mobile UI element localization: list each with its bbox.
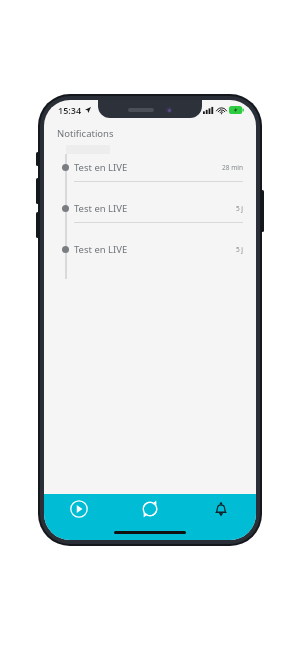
staticText: 5 j [235,204,243,213]
staticText: Notifications [57,127,114,140]
button[interactable]: Test en LIVE [44,236,256,263]
button[interactable]: Test en LIVE [44,154,256,195]
staticText: 5 j [235,245,243,254]
staticText: 15:34 [58,104,82,116]
button[interactable]: Refresh [114,494,185,524]
button[interactable]: Test en LIVE [44,195,256,236]
staticText: 28 min [222,163,243,172]
staticText: Test en LIVE [74,243,128,256]
staticText: Test en LIVE [74,202,128,215]
staticText: Test en LIVE [74,161,128,174]
button[interactable]: Play [44,494,114,524]
button[interactable]: Notifications [185,494,256,524]
